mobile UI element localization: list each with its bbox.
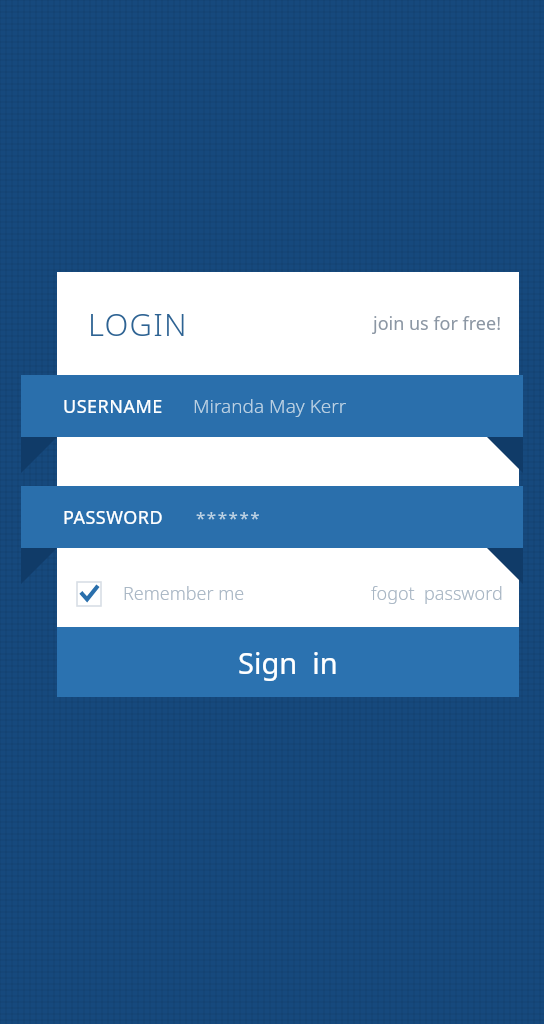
staticText: Miranda May Kerr [193, 393, 347, 419]
button[interactable]: fogot password [371, 581, 503, 606]
button[interactable]: PASSWORD [21, 486, 523, 548]
staticText: LOGIN [88, 303, 188, 345]
staticText: USERNAME [63, 394, 163, 419]
staticText: Sign in [238, 643, 338, 682]
button[interactable]: USERNAME [21, 375, 523, 437]
staticText: Remember me [123, 581, 245, 606]
button[interactable]: Remember me [77, 581, 245, 606]
staticText: ****** [196, 506, 262, 529]
button[interactable]: Sign in [57, 627, 519, 697]
staticText: PASSWORD [63, 505, 164, 530]
button[interactable]: join us for free! [373, 311, 502, 336]
